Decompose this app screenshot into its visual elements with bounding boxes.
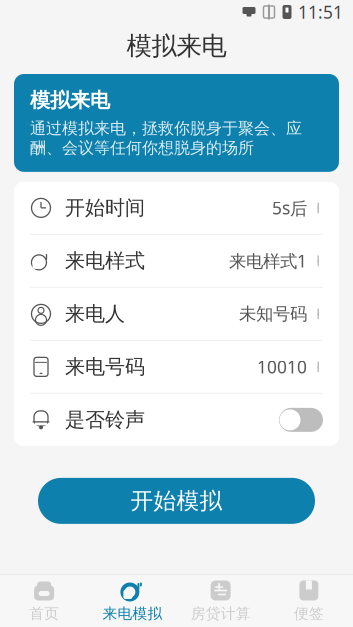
button[interactable]: 房贷计算	[176, 573, 265, 627]
staticText: 来电模拟	[102, 604, 162, 622]
button[interactable]: 是否铃声	[14, 394, 339, 446]
staticText: 便签	[294, 604, 324, 622]
staticText: 10010	[257, 355, 307, 378]
staticText: 来电号码	[65, 355, 145, 379]
staticText: 来电人	[65, 302, 125, 326]
staticText: 开始模拟	[130, 487, 222, 515]
staticText: 来电样式1	[229, 249, 307, 272]
button[interactable]: 来电号码	[14, 341, 339, 393]
staticText: 模拟来电	[30, 88, 110, 113]
staticText: 未知号码	[239, 303, 307, 324]
staticText: 是否铃声	[65, 408, 145, 432]
button[interactable]: 来电人	[14, 288, 339, 340]
button[interactable]: 开始时间	[14, 182, 339, 234]
staticText: 首页	[29, 604, 59, 622]
button[interactable]: 来电模拟	[88, 573, 176, 627]
button[interactable]: 来电样式	[14, 235, 339, 287]
staticText: 来电样式	[65, 249, 145, 273]
button[interactable]: 开始模拟	[38, 478, 315, 524]
staticText: 开始时间	[65, 196, 145, 220]
staticText: 通过模拟来电，拯救你脱身于聚会、应酬、会议等任何你想脱身的场所	[30, 119, 302, 158]
staticText: 房贷计算	[191, 604, 251, 622]
staticText: 模拟来电	[126, 30, 226, 61]
staticText: 11:51	[298, 0, 343, 23]
button[interactable]: 便签	[265, 573, 353, 627]
button[interactable]: 首页	[0, 573, 88, 627]
staticText: 5s后	[272, 196, 307, 219]
